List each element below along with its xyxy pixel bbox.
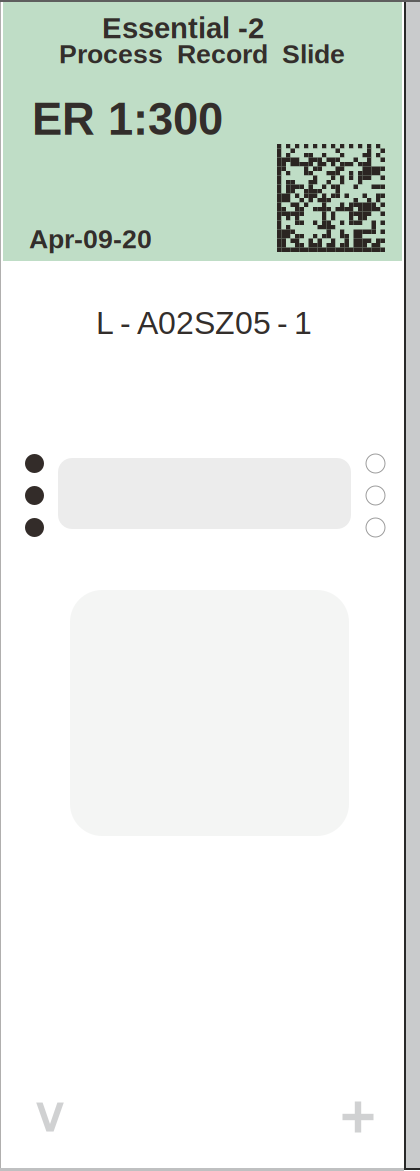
button[interactable]: Add bbox=[323, 1087, 393, 1147]
staticText: ER 1:300 bbox=[32, 94, 223, 144]
staticText: L - A02SZ05 - 1 bbox=[96, 305, 312, 341]
staticText: Essential -2 bbox=[102, 12, 264, 44]
button[interactable]: Option bbox=[366, 454, 385, 473]
button[interactable]: Option bbox=[366, 486, 385, 505]
staticText: Apr-09-20 bbox=[29, 224, 152, 254]
staticText: Process Record Slide bbox=[59, 39, 345, 69]
button[interactable]: Collapse bbox=[15, 1087, 85, 1147]
button[interactable]: Option bbox=[366, 518, 385, 537]
